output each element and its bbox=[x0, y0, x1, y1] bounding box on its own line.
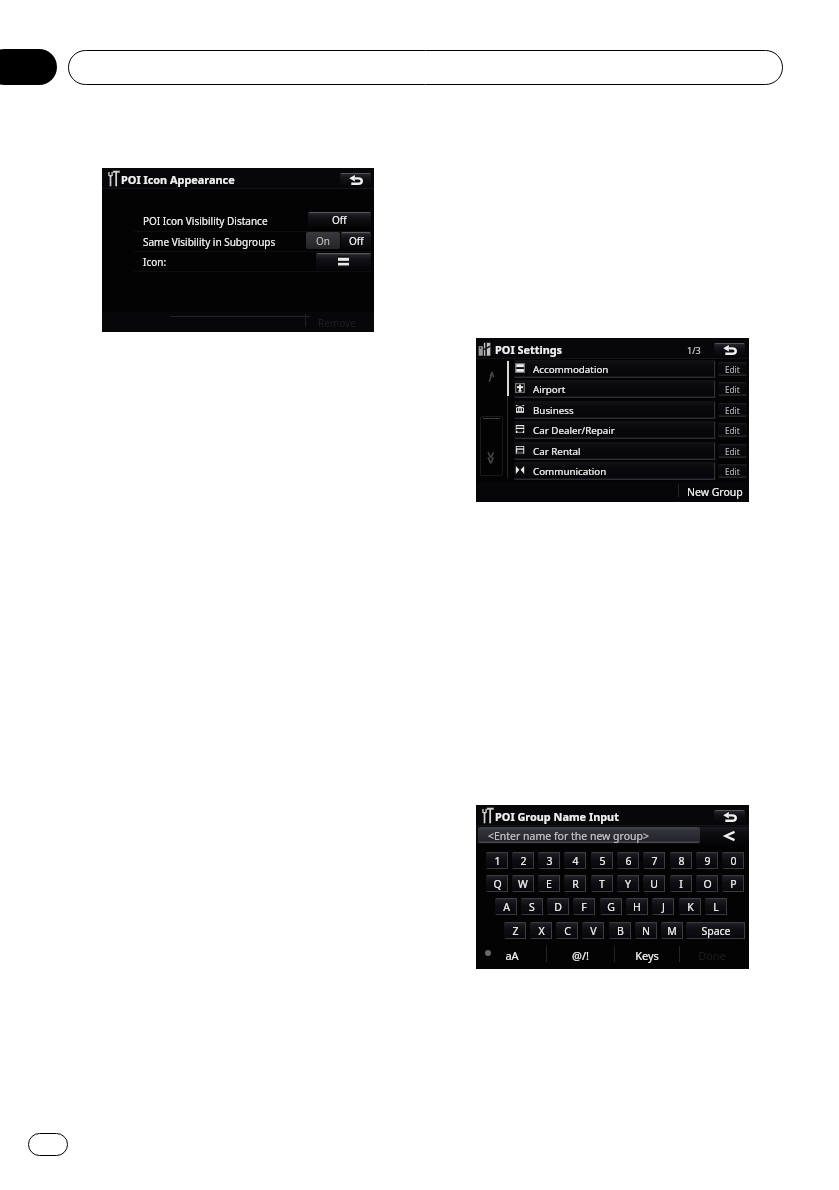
staticText: aA bbox=[505, 948, 519, 963]
staticText: POI Icon Appearance bbox=[121, 172, 235, 187]
button[interactable]: New Group bbox=[683, 484, 747, 500]
button[interactable]: Edit bbox=[718, 403, 747, 417]
button[interactable]: K bbox=[679, 898, 701, 915]
staticText: Accommodation bbox=[533, 363, 609, 376]
button[interactable]: Done bbox=[682, 945, 742, 965]
button[interactable]: Remove bbox=[316, 315, 358, 330]
button[interactable]: U bbox=[643, 875, 665, 892]
button[interactable]: Edit bbox=[718, 382, 747, 396]
button[interactable]: 8 bbox=[670, 852, 692, 869]
staticText: <Enter name for the new group> bbox=[488, 829, 649, 843]
button[interactable]: aA bbox=[483, 945, 541, 965]
staticText: R bbox=[572, 877, 579, 891]
button[interactable]: Car Rental bbox=[512, 441, 749, 461]
button[interactable]: H bbox=[626, 898, 648, 915]
button[interactable]: P bbox=[722, 875, 744, 892]
button[interactable]: 9 bbox=[696, 852, 718, 869]
staticText: Edit bbox=[725, 466, 740, 477]
button[interactable]: Off bbox=[308, 212, 371, 227]
button[interactable]: <Enter name for the new group> bbox=[478, 827, 700, 843]
button[interactable]: Space bbox=[686, 922, 745, 939]
button[interactable]: L bbox=[705, 898, 727, 915]
button[interactable]: O bbox=[696, 875, 718, 892]
staticText: D bbox=[554, 900, 562, 914]
staticText: U bbox=[650, 877, 658, 891]
staticText: G bbox=[607, 900, 615, 914]
button[interactable]: 7 bbox=[643, 852, 665, 869]
staticText: On bbox=[316, 234, 330, 248]
button[interactable]: Backspace bbox=[700, 827, 749, 844]
button[interactable]: Accommodation bbox=[512, 359, 749, 379]
button[interactable]: Communication bbox=[512, 461, 749, 481]
button[interactable]: 3 bbox=[538, 852, 560, 869]
button[interactable]: Edit bbox=[718, 423, 747, 437]
staticText: L bbox=[713, 900, 719, 914]
button[interactable]: Z bbox=[504, 922, 526, 939]
staticText: I bbox=[679, 877, 683, 891]
button[interactable]: Back bbox=[714, 343, 745, 357]
button[interactable]: C bbox=[556, 922, 578, 939]
button[interactable]: 1 bbox=[486, 852, 508, 869]
staticText: T bbox=[599, 877, 605, 891]
button[interactable]: G bbox=[600, 898, 622, 915]
button[interactable]: D bbox=[547, 898, 569, 915]
staticText: Same Visibility in Subgroups bbox=[143, 235, 276, 249]
button[interactable]: Q bbox=[486, 875, 508, 892]
staticText: 9 bbox=[704, 854, 711, 868]
button[interactable]: @/! bbox=[547, 945, 613, 965]
button[interactable]: T bbox=[591, 875, 613, 892]
button[interactable]: M bbox=[661, 922, 683, 939]
button[interactable]: Business bbox=[512, 400, 749, 420]
button[interactable]: 0 bbox=[722, 852, 744, 869]
button[interactable]: N bbox=[635, 922, 657, 939]
staticText: Icon: bbox=[143, 255, 167, 269]
button[interactable]: On bbox=[306, 232, 340, 249]
button[interactable]: A bbox=[495, 898, 517, 915]
button[interactable]: Keys bbox=[616, 945, 678, 965]
button[interactable]: X bbox=[530, 922, 552, 939]
staticText: H bbox=[633, 900, 641, 914]
staticText: 5 bbox=[599, 854, 606, 868]
button[interactable]: 5 bbox=[591, 852, 613, 869]
button[interactable]: Back bbox=[340, 173, 371, 187]
button[interactable]: V bbox=[582, 922, 604, 939]
button[interactable]: Y bbox=[617, 875, 639, 892]
staticText: 1/3 bbox=[687, 344, 701, 356]
button[interactable]: F bbox=[573, 898, 595, 915]
staticText: Edit bbox=[725, 364, 740, 375]
staticText: Remove bbox=[318, 316, 356, 330]
staticText: Done bbox=[698, 948, 726, 963]
button[interactable]: 4 bbox=[564, 852, 586, 869]
staticText: W bbox=[518, 877, 528, 891]
staticText: POI Settings bbox=[495, 342, 563, 357]
button[interactable]: 2 bbox=[512, 852, 534, 869]
button[interactable]: Edit bbox=[718, 464, 747, 478]
button[interactable]: Off bbox=[341, 232, 371, 249]
staticText: Off bbox=[332, 213, 347, 227]
staticText: 4 bbox=[572, 854, 579, 868]
button[interactable]: Scroll up bbox=[481, 360, 503, 412]
button[interactable]: Scroll down bbox=[480, 416, 503, 476]
button[interactable]: Select icon bbox=[316, 253, 371, 270]
staticText: P bbox=[730, 877, 737, 891]
staticText: Edit bbox=[725, 384, 740, 395]
button[interactable]: Edit bbox=[718, 362, 747, 376]
button[interactable]: R bbox=[564, 875, 586, 892]
button[interactable]: Airport bbox=[512, 379, 749, 399]
button[interactable]: J bbox=[652, 898, 674, 915]
staticText: S bbox=[529, 900, 535, 914]
button[interactable]: B bbox=[609, 922, 631, 939]
button[interactable]: W bbox=[512, 875, 534, 892]
staticText: K bbox=[687, 900, 694, 914]
staticText: Space bbox=[701, 924, 731, 938]
staticText: X bbox=[538, 924, 545, 938]
staticText: 1 bbox=[494, 854, 501, 868]
button[interactable]: Car Dealer/Repair bbox=[512, 420, 749, 440]
button[interactable]: S bbox=[521, 898, 543, 915]
button[interactable]: Back bbox=[714, 810, 745, 824]
button[interactable]: Edit bbox=[718, 444, 747, 458]
button[interactable]: 6 bbox=[617, 852, 639, 869]
button[interactable]: E bbox=[538, 875, 560, 892]
staticText: J bbox=[662, 900, 665, 914]
button[interactable]: I bbox=[670, 875, 692, 892]
